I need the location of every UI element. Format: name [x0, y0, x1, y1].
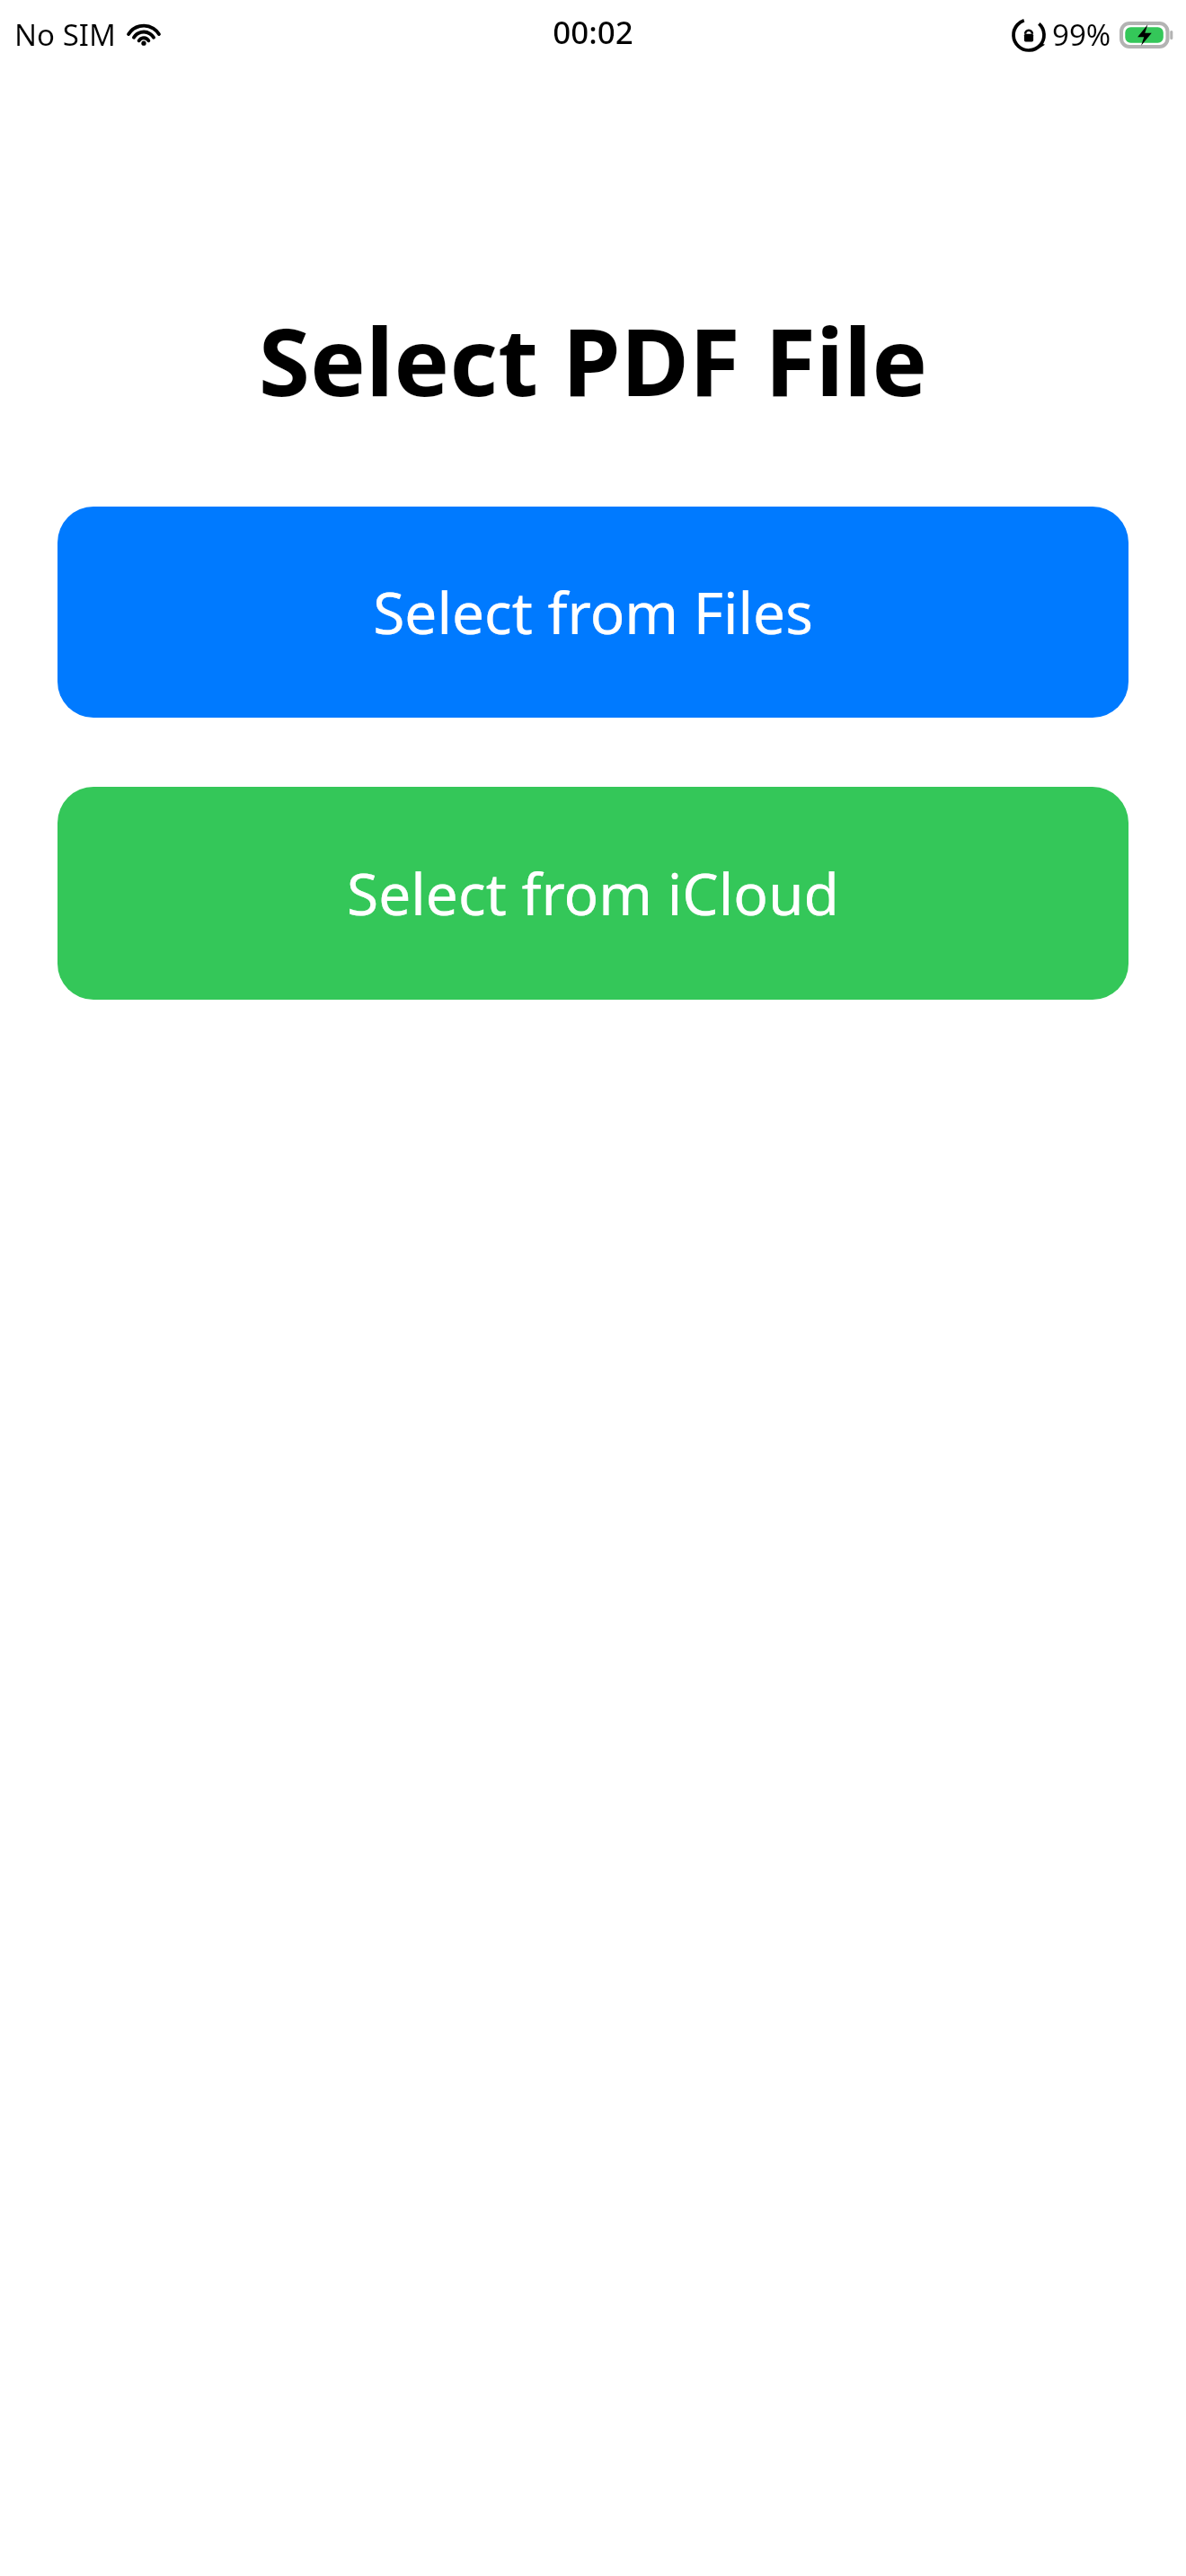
staticText: Select PDF File: [0, 296, 1186, 424]
button[interactable]: Select from Files: [58, 507, 1128, 718]
staticText: 00:02: [553, 11, 633, 54]
staticText: 99%: [1052, 14, 1111, 55]
staticText: Select from iCloud: [347, 854, 839, 932]
button[interactable]: Select from iCloud: [58, 787, 1128, 1000]
staticText: No SIM: [14, 14, 116, 55]
staticText: Select from Files: [373, 573, 813, 651]
